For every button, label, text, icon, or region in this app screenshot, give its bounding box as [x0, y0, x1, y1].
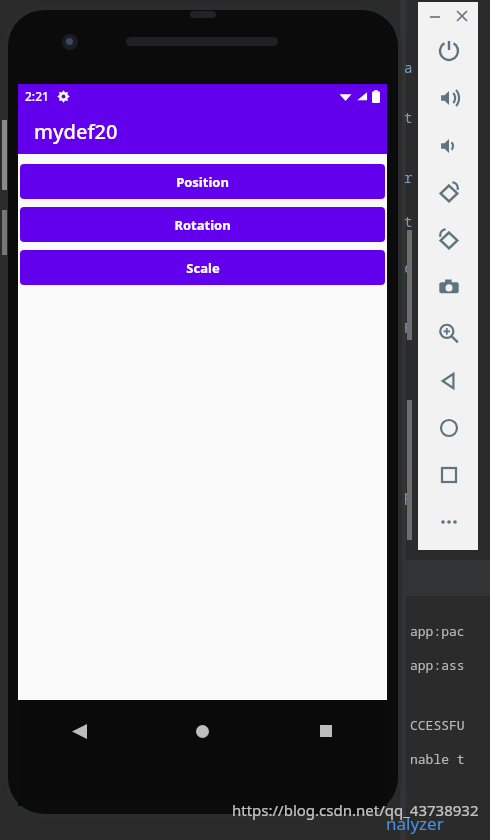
button[interactable]: Scale [20, 250, 385, 285]
button[interactable]: Emulator control [436, 368, 462, 394]
staticText: Scale [186, 259, 220, 277]
staticText: 2:21 [25, 88, 49, 104]
button[interactable]: Recent apps [264, 700, 387, 762]
staticText: app:ass [410, 656, 465, 674]
button[interactable]: Emulator control [436, 227, 462, 253]
button[interactable]: Emulator control [436, 274, 462, 300]
button[interactable]: Emulator control [436, 38, 462, 64]
staticText: c [404, 258, 413, 277]
staticText: Position [176, 173, 229, 191]
staticText: t [404, 212, 413, 231]
button[interactable]: Rotation [20, 207, 385, 242]
button[interactable]: Back [18, 700, 141, 762]
button[interactable]: Emulator control [436, 133, 462, 159]
staticText: p [404, 486, 413, 505]
staticText: F [404, 318, 413, 337]
button[interactable]: Emulator control [436, 509, 462, 535]
staticText: mydef20 [34, 118, 118, 145]
staticText: a [404, 58, 413, 77]
button[interactable]: Position [20, 164, 385, 199]
staticText: CCESSFU [410, 716, 465, 734]
staticText: https://blog.csdn.net/qq_43738932 [232, 800, 479, 820]
staticText: Rotation [174, 216, 231, 234]
button[interactable]: Emulator control [436, 85, 462, 111]
staticText: t [404, 108, 413, 127]
staticText: app:pac [410, 622, 465, 640]
staticText: nalyzer [386, 812, 444, 835]
button[interactable]: Emulator control [436, 180, 462, 206]
button[interactable]: Emulator control [436, 462, 462, 488]
button[interactable]: Emulator control [436, 415, 462, 441]
staticText: nable t [410, 750, 465, 768]
button[interactable]: mydef20 [18, 108, 387, 154]
button[interactable]: Home [141, 700, 264, 762]
button[interactable]: Emulator control [436, 321, 462, 347]
staticText: r [404, 168, 413, 187]
